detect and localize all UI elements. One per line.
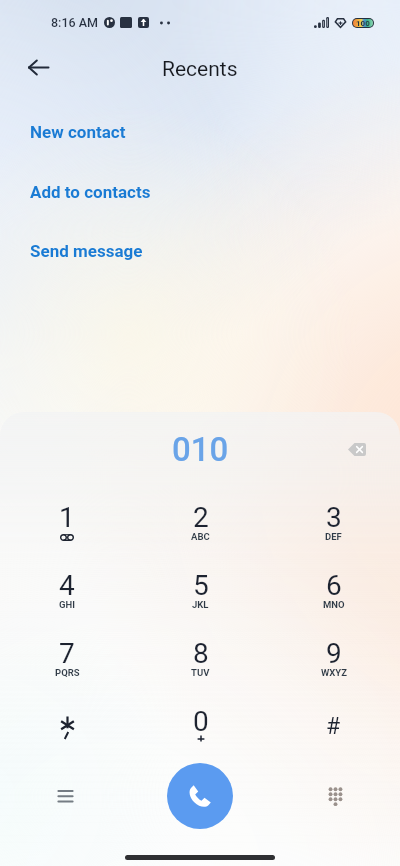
button[interactable]: Back <box>14 43 62 91</box>
button[interactable]: 2 <box>134 489 267 557</box>
button[interactable]: More options <box>41 772 89 820</box>
staticText: 7 <box>59 637 75 670</box>
staticText: TUV <box>191 667 210 678</box>
button[interactable]: 0 <box>134 693 267 761</box>
staticText: ABC <box>191 531 210 542</box>
button[interactable]: 6 <box>267 557 400 625</box>
staticText: 8:16 AM <box>51 15 99 30</box>
button[interactable]: Add to contacts <box>30 182 151 202</box>
staticText: 1 <box>59 501 75 534</box>
button[interactable] <box>0 693 134 761</box>
staticText: PQRS <box>55 667 80 678</box>
button[interactable]: 3 <box>267 489 400 557</box>
staticText: Recents <box>162 57 238 82</box>
button[interactable]: 4 <box>0 557 134 625</box>
staticText: WXYZ <box>321 667 347 678</box>
staticText: DEF <box>325 531 342 542</box>
staticText: 010 <box>172 430 229 469</box>
staticText: JKL <box>192 599 209 610</box>
button[interactable]: 7 <box>0 625 134 693</box>
staticText: New contact <box>30 122 126 142</box>
staticText: 0 <box>193 705 209 738</box>
staticText: Add to contacts <box>30 182 151 202</box>
staticText: 5 <box>193 569 209 602</box>
staticText: 4 <box>59 569 75 602</box>
staticText: 6 <box>326 569 342 602</box>
staticText: 8 <box>193 637 209 670</box>
staticText: # <box>326 713 341 740</box>
button[interactable]: New contact <box>30 122 126 142</box>
button[interactable]: Call <box>167 763 233 829</box>
staticText: Send message <box>30 241 143 261</box>
staticText: 9 <box>326 637 342 670</box>
staticText: GHI <box>59 599 75 610</box>
button[interactable]: 8 <box>134 625 267 693</box>
staticText: MNO <box>323 599 345 610</box>
button[interactable]: # <box>267 693 400 761</box>
button[interactable]: Send message <box>30 241 143 261</box>
staticText: 3 <box>326 501 342 534</box>
staticText: 100 <box>356 19 370 27</box>
button[interactable]: 1 <box>0 489 134 557</box>
button[interactable]: 9 <box>267 625 400 693</box>
button[interactable]: Dialpad <box>311 772 359 820</box>
button[interactable]: Backspace <box>335 427 379 471</box>
button[interactable]: 5 <box>134 557 267 625</box>
staticText: 2 <box>193 501 209 534</box>
